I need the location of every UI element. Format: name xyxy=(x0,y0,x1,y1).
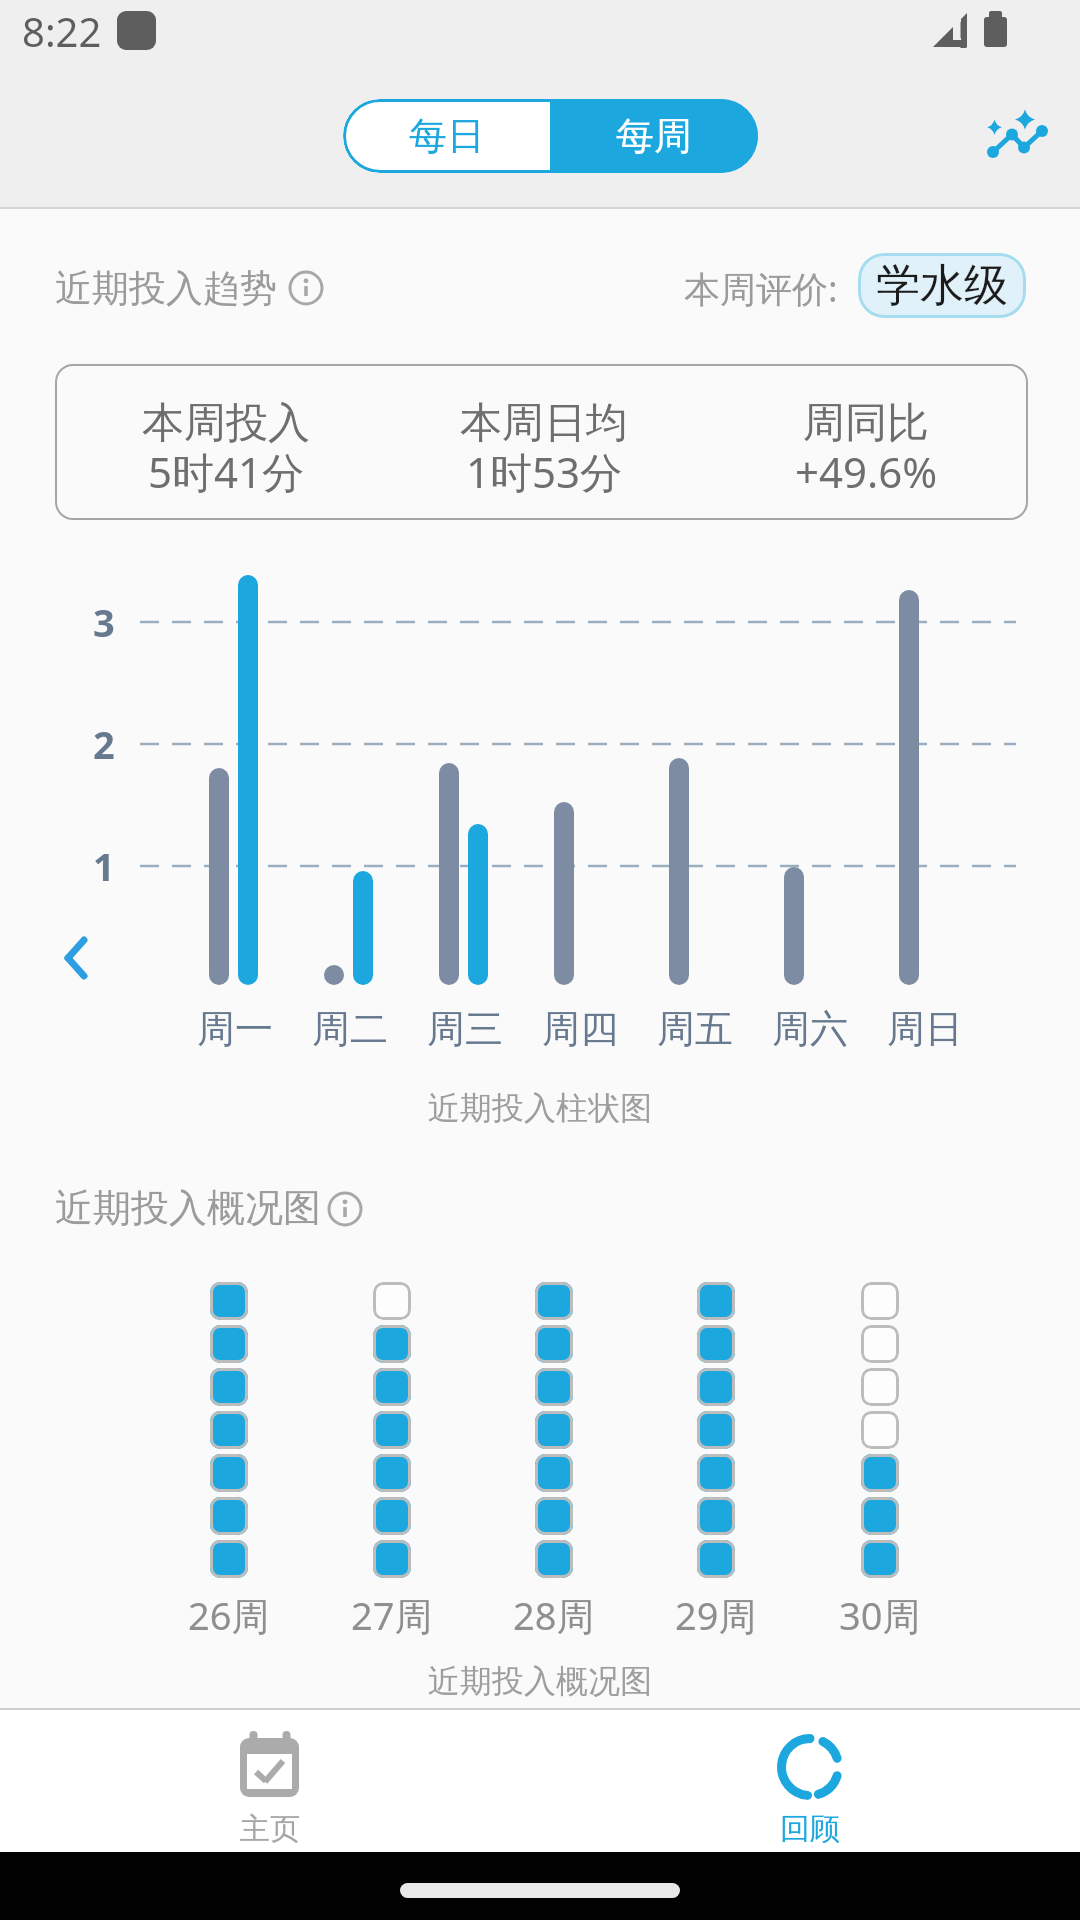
staticText: 周三 xyxy=(427,1005,503,1053)
staticText: 8:22 xyxy=(22,4,102,58)
staticText: 本周投入 xyxy=(142,397,310,450)
staticText: 近期投入概况图 xyxy=(428,1661,652,1701)
staticText: 29周 xyxy=(675,1589,757,1641)
staticText: 26周 xyxy=(188,1589,270,1641)
staticText: 5时41分 xyxy=(148,443,305,500)
staticText: 周二 xyxy=(312,1005,388,1053)
button[interactable]: 每周 xyxy=(550,99,758,173)
button[interactable]: 主页 xyxy=(180,1712,360,1850)
staticText: 周四 xyxy=(542,1005,618,1053)
staticText: 周同比 xyxy=(803,397,929,450)
button[interactable]: 每日 xyxy=(343,99,550,173)
button[interactable] xyxy=(50,930,106,986)
button[interactable]: 学水级 xyxy=(858,253,1026,318)
staticText: 周一 xyxy=(197,1005,273,1053)
staticText: 近期投入概况图 xyxy=(55,1184,321,1232)
button[interactable] xyxy=(975,99,1047,171)
staticText: 每周 xyxy=(616,112,692,160)
staticText: +49.6% xyxy=(795,443,938,500)
staticText: 30周 xyxy=(839,1589,921,1641)
button[interactable] xyxy=(286,268,326,308)
staticText: 1 xyxy=(93,840,115,892)
staticText: 2 xyxy=(93,718,115,770)
staticText: 本周日均 xyxy=(460,397,628,450)
staticText: 周五 xyxy=(657,1005,733,1053)
staticText: 学水级 xyxy=(876,258,1008,313)
staticText: 3 xyxy=(93,596,115,648)
button[interactable] xyxy=(325,1189,365,1229)
staticText: 27周 xyxy=(351,1589,433,1641)
button[interactable]: 回顾 xyxy=(720,1712,900,1850)
staticText: 28周 xyxy=(513,1589,595,1641)
staticText: 本周评价: xyxy=(684,264,838,313)
staticText: 近期投入柱状图 xyxy=(428,1088,652,1128)
staticText: 周六 xyxy=(772,1005,848,1053)
staticText: 1时53分 xyxy=(466,443,623,500)
staticText: 回顾 xyxy=(780,1810,840,1848)
staticText: 近期投入趋势 xyxy=(55,265,277,312)
staticText: 周日 xyxy=(887,1005,963,1053)
staticText: 每日 xyxy=(409,112,485,160)
staticText: 主页 xyxy=(240,1810,300,1848)
